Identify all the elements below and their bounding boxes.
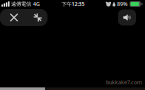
- button[interactable]: Volume: [118, 9, 136, 25]
- staticText: 89%: [117, 0, 128, 8]
- staticText: 下午12:35: [61, 0, 84, 8]
- staticText: 遠傳電信: [11, 1, 31, 7]
- button[interactable]: Close: [0, 9, 28, 26]
- button[interactable]: Minimize: [28, 9, 47, 26]
- staticText: 4G: [33, 0, 40, 8]
- staticText: bukkake7.com: [106, 79, 142, 86]
